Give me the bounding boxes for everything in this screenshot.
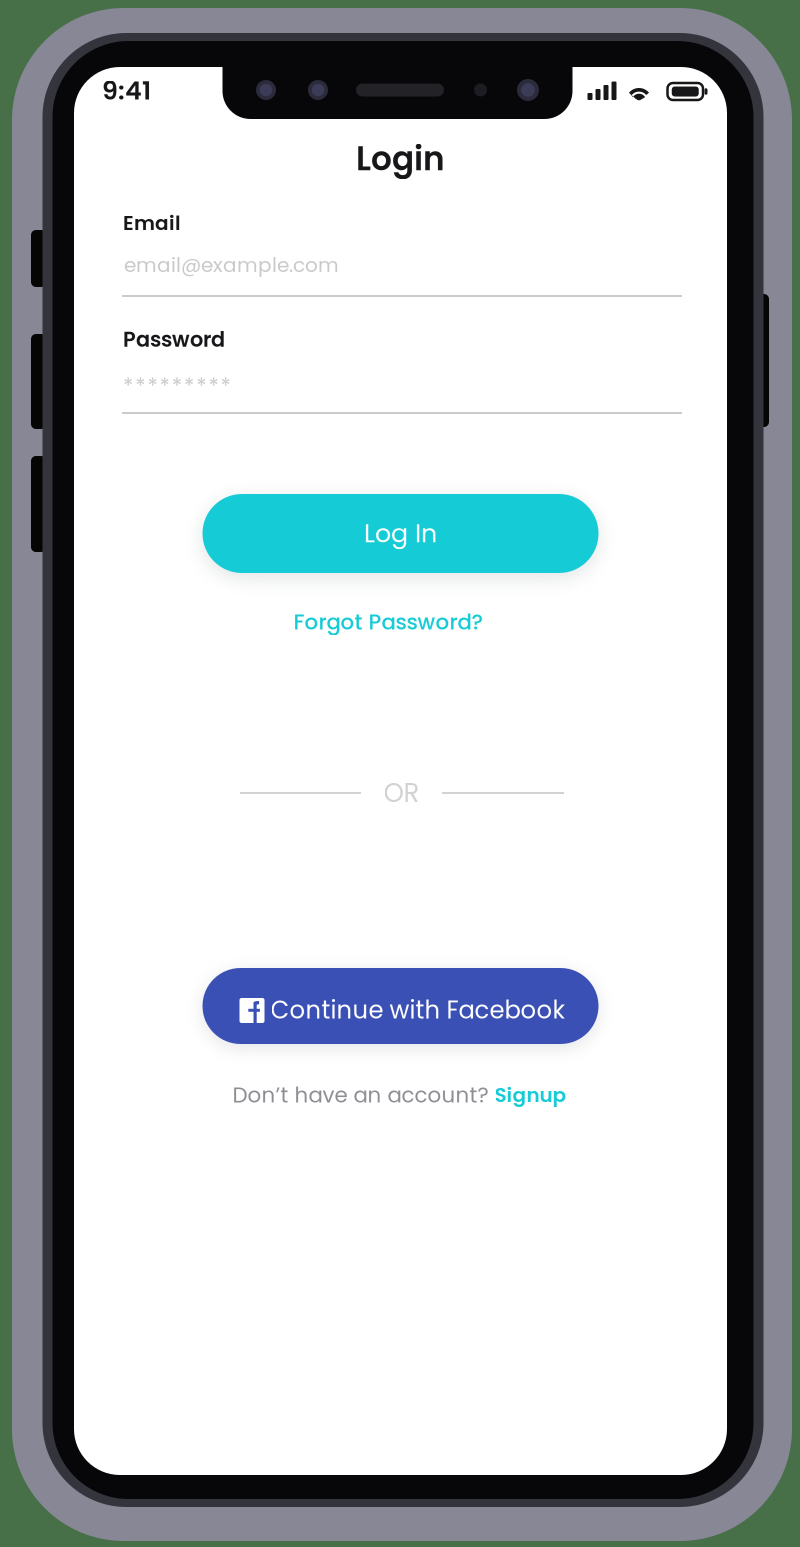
staticText: Password [123,325,225,354]
staticText: * [196,371,206,401]
staticText: 9:41 [102,73,151,108]
staticText: Forgot Password? [293,607,482,637]
staticText: Email [123,209,181,237]
staticText: * [221,371,231,401]
staticText: Login [356,136,445,182]
button[interactable]: Log In [202,494,598,573]
staticText: Signup [494,1081,566,1109]
button[interactable]: Continue with Facebook [202,968,598,1044]
button[interactable]: Forgot Password? [288,604,488,640]
staticText: Continue with Facebook [270,993,564,1027]
staticText: * [208,371,218,401]
staticText: email@example.com [124,251,339,279]
button[interactable]: Signup [494,1081,566,1109]
staticText: * [147,371,157,401]
staticText: OR [383,775,419,811]
staticText: * [135,371,145,401]
staticText: Log In [364,516,437,551]
staticText: * [160,371,170,401]
staticText: * [172,371,182,401]
staticText: * [123,371,133,401]
staticText: Don’t have an account? [232,1080,488,1110]
staticText: * [184,371,194,401]
